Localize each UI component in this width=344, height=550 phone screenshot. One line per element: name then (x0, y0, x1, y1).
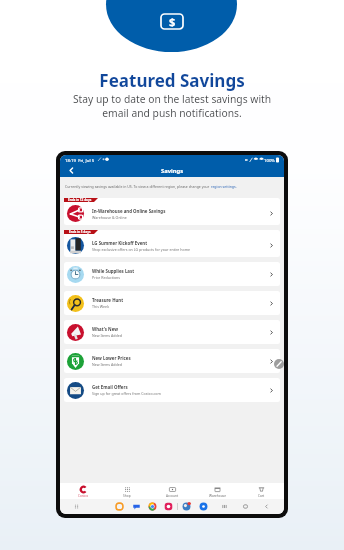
button[interactable]: Treasure Hunt (64, 291, 280, 315)
button[interactable]: Shop (105, 483, 149, 498)
staticText: 100% (264, 157, 275, 163)
staticText: Ends in 12 days (68, 198, 92, 202)
staticText: Sign up for great offers from Costco.com (92, 391, 161, 396)
button[interactable]: Back (67, 166, 76, 175)
staticText: 18:19 Fri, Jul 5 (65, 157, 95, 163)
button[interactable]: Recents (221, 503, 228, 510)
staticText: Warehouse & Online (92, 215, 127, 220)
staticText: Treasure Hunt (92, 297, 124, 303)
button[interactable]: App 5 (199, 502, 208, 511)
button[interactable]: App 3 (164, 502, 173, 511)
button[interactable]: New Lower Prices (64, 349, 280, 373)
staticText: $ (169, 14, 176, 29)
button[interactable]: In-Warehouse and Online Savings (64, 198, 280, 225)
staticText: Savings (161, 167, 184, 175)
staticText: In-Warehouse and Online Savings (92, 208, 166, 214)
staticText: What's New (92, 326, 118, 332)
staticText: Featured Savings (0, 69, 344, 92)
button[interactable]: While Supplies Last (64, 262, 280, 286)
staticText: Cart (258, 494, 265, 498)
button[interactable]: App 4 (182, 502, 191, 511)
button[interactable]: What's New (64, 320, 280, 344)
button[interactable]: Back (263, 503, 270, 510)
button[interactable]: LG Summer Kickoff Event (64, 230, 280, 257)
button[interactable]: Costco (61, 483, 105, 498)
staticText: Stay up to date on the latest savings wi… (0, 92, 344, 120)
staticText: Price Reductions (92, 275, 121, 280)
button[interactable]: Home (242, 503, 249, 510)
button[interactable]: Warehouse (195, 483, 239, 498)
staticText: Account (166, 494, 179, 498)
staticText: This Week (92, 304, 110, 309)
staticText: Ends in 5 days (69, 230, 91, 234)
button[interactable]: Cart (239, 483, 283, 498)
button[interactable]: App 2 (148, 502, 157, 511)
button[interactable]: App 1 (132, 502, 141, 511)
button[interactable]: region settings. (211, 184, 237, 189)
staticText: New Lower Prices (92, 355, 131, 361)
button[interactable]: Account (150, 483, 194, 498)
staticText: New Items Added (92, 362, 122, 367)
staticText: New Items Added (92, 333, 122, 338)
staticText: Costco (78, 494, 89, 498)
staticText: Get Email Offers (92, 384, 128, 390)
staticText: Shop exclusive offers on LG products for… (92, 247, 191, 252)
button[interactable]: Get Email Offers (64, 378, 280, 402)
staticText: Currently viewing savings available in U… (65, 184, 211, 189)
staticText: Shop (123, 494, 131, 498)
staticText: While Supplies Last (92, 268, 135, 274)
staticText: Warehouse (209, 494, 226, 498)
button[interactable]: App 0 (115, 502, 124, 511)
staticText: LG Summer Kickoff Event (92, 240, 148, 246)
